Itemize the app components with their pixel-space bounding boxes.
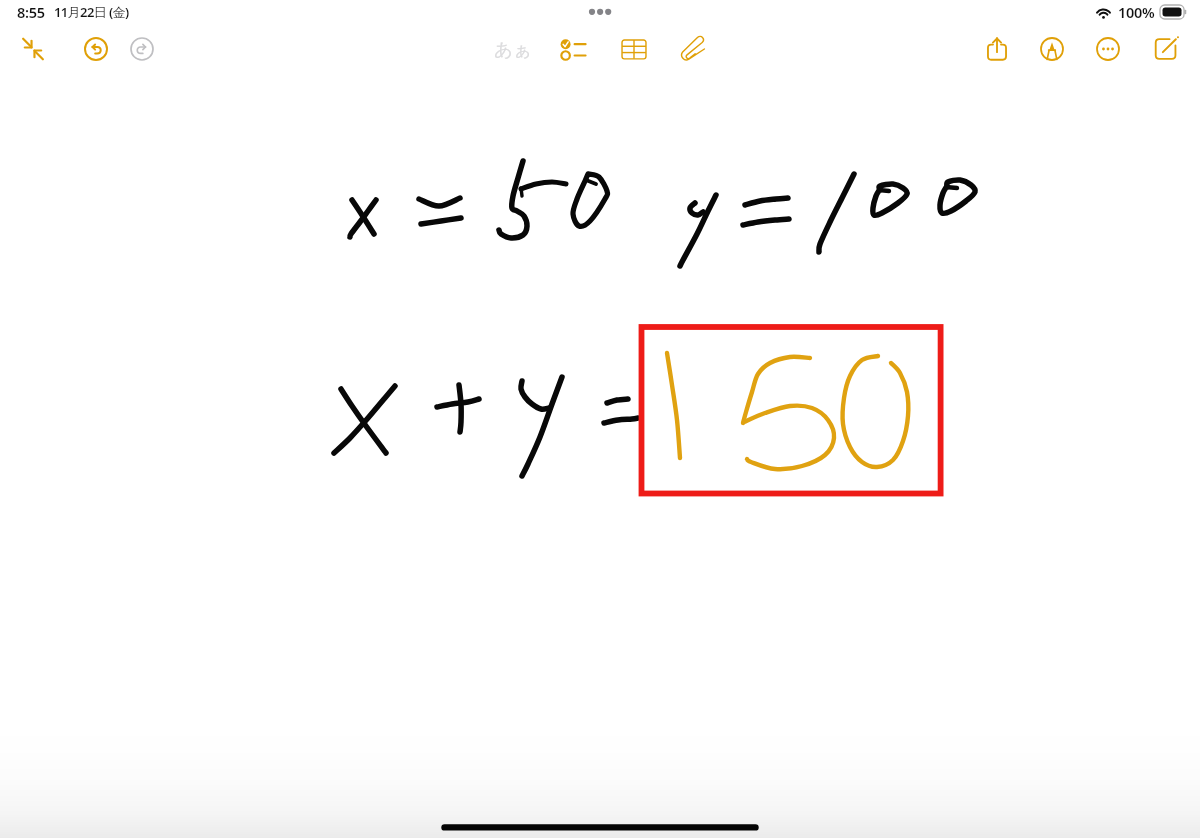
button[interactable]: More — [1087, 28, 1129, 70]
button[interactable]: Checklist — [553, 28, 595, 70]
button[interactable]: Undo — [75, 28, 117, 70]
button[interactable]: Attachment — [671, 28, 713, 70]
staticText: 11月22日 (金) — [54, 3, 129, 21]
button[interactable]: Markup — [1031, 28, 1073, 70]
button[interactable]: Minimize — [12, 28, 54, 70]
button[interactable]: あぁ — [490, 28, 536, 70]
button[interactable]: Redo — [121, 28, 163, 70]
staticText: あぁ — [494, 38, 532, 61]
button[interactable]: Share — [976, 28, 1018, 70]
button[interactable]: New note — [1145, 28, 1187, 70]
staticText: 8:55 — [17, 2, 45, 22]
button[interactable]: Table — [613, 28, 655, 70]
staticText: 100% — [1118, 2, 1155, 22]
